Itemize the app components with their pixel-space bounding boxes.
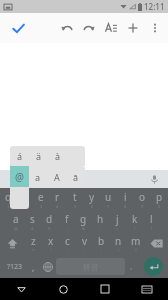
button[interactable]: Shift	[0, 232, 25, 255]
staticText: #	[31, 226, 34, 231]
staticText: _	[66, 226, 68, 231]
button[interactable]: s	[24, 210, 41, 232]
button[interactable]: Add	[122, 14, 144, 42]
button[interactable]: ?123	[2, 255, 27, 278]
button[interactable]: c	[59, 232, 76, 255]
staticText: i	[124, 190, 127, 204]
button[interactable]: d	[41, 210, 58, 232]
staticText: z	[31, 234, 36, 248]
staticText: k	[132, 212, 138, 226]
button[interactable]: A key	[10, 187, 29, 209]
staticText: A	[54, 171, 60, 183]
button[interactable]: Undo	[56, 14, 78, 42]
button[interactable]: v	[76, 232, 93, 255]
button[interactable]: Text formatting	[100, 14, 122, 42]
button[interactable]: z	[25, 232, 42, 255]
button[interactable]: m	[127, 232, 144, 255]
staticText: $	[48, 226, 51, 231]
staticText: f	[65, 212, 69, 226]
staticText: +	[116, 226, 119, 231]
button[interactable]: g	[75, 210, 92, 232]
button[interactable]: r	[49, 188, 66, 210]
button[interactable]: Voice input	[146, 171, 162, 187]
button[interactable]: i	[117, 188, 134, 210]
button[interactable]: á	[10, 146, 29, 166]
button[interactable]: ā	[66, 166, 85, 187]
staticText: ä	[36, 150, 42, 162]
staticText: p	[156, 190, 163, 204]
staticText: ?123	[7, 262, 23, 272]
staticText: (	[134, 226, 136, 231]
button[interactable]: Change language	[40, 255, 56, 278]
staticText: o	[139, 190, 146, 204]
button[interactable]: l	[143, 210, 160, 232]
staticText: *	[32, 248, 35, 253]
button[interactable]: q	[0, 188, 16, 210]
button[interactable]: Backspace	[144, 232, 168, 255]
staticText: v	[82, 234, 88, 248]
button[interactable]: More options	[144, 14, 166, 42]
staticText: @	[14, 226, 18, 231]
button[interactable]: t	[66, 188, 83, 210]
staticText: á	[17, 150, 23, 162]
staticText: l	[150, 212, 153, 226]
staticText: e	[38, 190, 44, 204]
button[interactable]: w	[16, 188, 32, 210]
staticText: &	[82, 226, 85, 231]
staticText: 1	[7, 204, 10, 209]
button[interactable]: j	[109, 210, 126, 232]
staticText: ;	[101, 248, 103, 253]
staticText: j	[116, 212, 119, 226]
staticText: 9	[141, 204, 144, 209]
staticText: 拼音	[83, 262, 99, 272]
button[interactable]: u	[100, 188, 117, 210]
staticText: 6	[91, 204, 94, 209]
staticText: à	[55, 150, 61, 162]
staticText: 12:11	[144, 1, 165, 12]
staticText: x	[48, 234, 54, 248]
button[interactable]: Home	[42, 278, 84, 300]
staticText: 3	[40, 204, 43, 209]
button[interactable]: f	[58, 210, 75, 232]
staticText: 。	[130, 263, 136, 271]
button[interactable]: n	[110, 232, 127, 255]
button[interactable]: Redo	[78, 14, 100, 42]
button[interactable]: @	[10, 166, 29, 187]
button[interactable]: o	[134, 188, 151, 210]
staticText: r	[55, 190, 60, 204]
button[interactable]: h	[92, 210, 109, 232]
button[interactable]: k	[126, 210, 143, 232]
button[interactable]: Back	[0, 278, 42, 300]
button[interactable]: Done	[6, 16, 30, 40]
staticText: u	[105, 190, 112, 204]
button[interactable]: b	[93, 232, 110, 255]
staticText: )	[151, 226, 153, 231]
button[interactable]: p	[151, 188, 168, 210]
staticText: y	[89, 190, 95, 204]
button[interactable]: x	[42, 232, 59, 255]
button[interactable]: A	[47, 166, 66, 187]
staticText: ā	[73, 171, 79, 183]
button[interactable]: ,	[27, 255, 40, 278]
staticText: '	[67, 248, 68, 253]
button[interactable]: a	[29, 166, 47, 187]
staticText: 8	[124, 204, 127, 209]
button[interactable]: à	[48, 146, 67, 166]
button[interactable]: ä	[29, 146, 48, 166]
button[interactable]: y	[83, 188, 100, 210]
staticText: q	[5, 190, 12, 204]
button[interactable]: a	[8, 210, 24, 232]
staticText: n	[115, 234, 122, 248]
staticText: m	[131, 234, 141, 248]
button[interactable]: Recent apps	[84, 278, 126, 300]
staticText: !	[118, 248, 120, 253]
button[interactable]: Enter	[140, 255, 166, 278]
button[interactable]: e	[32, 188, 49, 210]
button[interactable]: Switch keyboard	[126, 278, 168, 300]
